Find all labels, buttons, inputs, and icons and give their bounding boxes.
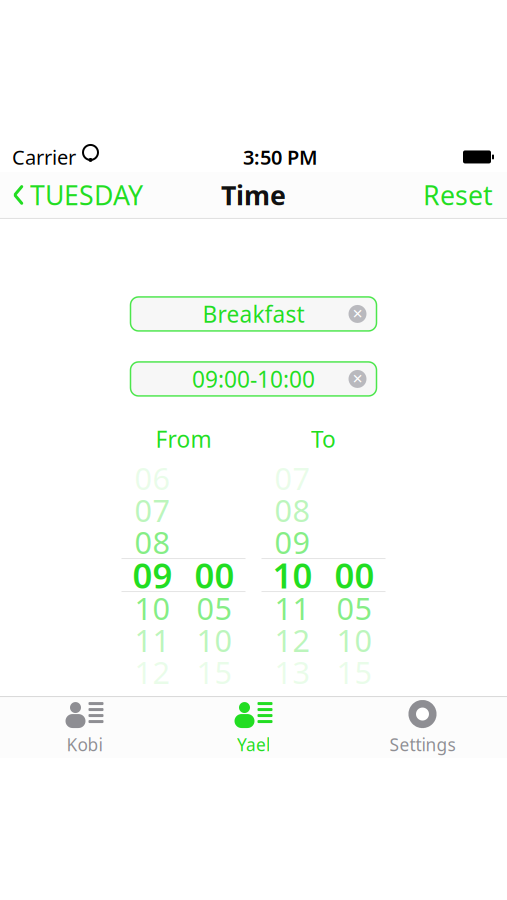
button[interactable]: TUESDAY: [0, 173, 155, 217]
staticText: Yael: [237, 733, 270, 756]
staticText: Carrier: [12, 144, 76, 170]
button[interactable]: Clear: [342, 299, 372, 329]
staticText: TUESDAY: [30, 177, 143, 213]
staticText: 08: [274, 490, 310, 530]
staticText: To: [311, 424, 336, 454]
staticText: ✕: [352, 371, 363, 386]
staticText: 10: [134, 588, 170, 628]
staticText: 05: [336, 588, 372, 628]
staticText: 11: [134, 620, 170, 660]
button[interactable]: Clear: [342, 364, 372, 394]
staticText: 07: [274, 458, 310, 498]
button[interactable]: Settings: [338, 700, 507, 756]
staticText: 09: [132, 552, 172, 598]
staticText: 09:00-10:00: [192, 364, 315, 394]
staticText: 15: [336, 652, 372, 692]
staticText: From: [155, 424, 211, 454]
staticText: 11: [274, 588, 310, 628]
staticText: Time: [221, 177, 286, 213]
staticText: 10: [196, 620, 232, 660]
staticText: Kobi: [66, 733, 102, 756]
staticText: Reset: [423, 177, 493, 213]
staticText: 08: [134, 522, 170, 562]
staticText: 00: [194, 552, 234, 598]
staticText: 10: [272, 552, 312, 598]
staticText: Breakfast: [202, 299, 304, 329]
staticText: 05: [196, 588, 232, 628]
staticText: 13: [274, 652, 310, 692]
staticText: 07: [134, 490, 170, 530]
staticText: 00: [334, 552, 374, 598]
staticText: 3:50 PM: [243, 144, 318, 170]
button[interactable]: Kobi: [0, 700, 169, 756]
button[interactable]: Reset: [409, 173, 507, 217]
staticText: 09: [274, 522, 310, 562]
button[interactable]: Yael: [169, 700, 338, 756]
staticText: 15: [196, 652, 232, 692]
staticText: 12: [134, 652, 170, 692]
staticText: ✕: [352, 306, 363, 321]
staticText: Settings: [389, 733, 455, 756]
staticText: 12: [274, 620, 310, 660]
staticText: 06: [134, 458, 170, 498]
staticText: 10: [336, 620, 372, 660]
